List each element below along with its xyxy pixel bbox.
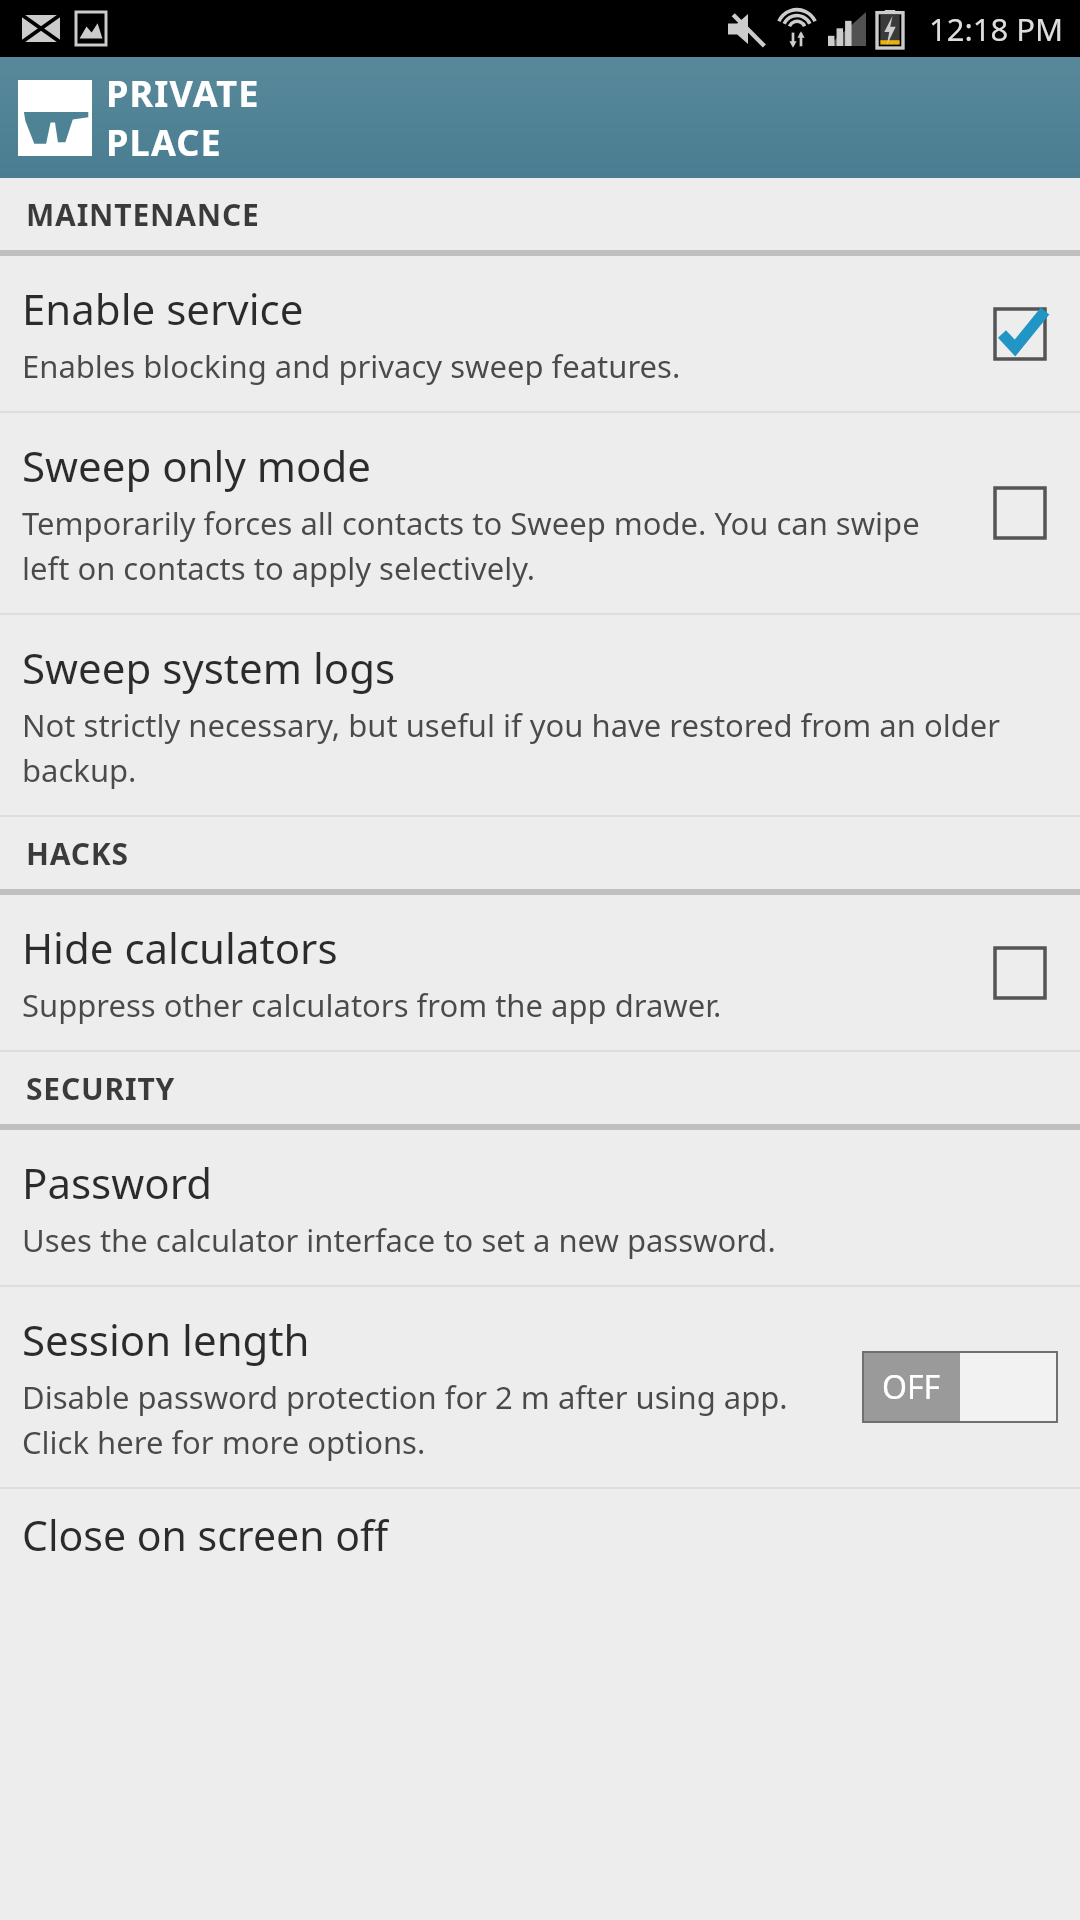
button[interactable]: Hide calculators bbox=[0, 895, 1080, 1050]
button[interactable]: Sweep system logs bbox=[0, 615, 1080, 815]
staticText: Temporarily forces all contacts to Sweep… bbox=[22, 502, 964, 589]
staticText: Close on screen off bbox=[22, 1507, 389, 1559]
staticText: HACKS bbox=[26, 833, 129, 874]
staticText: Enable service bbox=[22, 280, 304, 337]
staticText: Suppress other calculators from the app … bbox=[22, 984, 722, 1026]
button[interactable]: Checked bbox=[982, 296, 1058, 372]
staticText: Uses the calculator interface to set a n… bbox=[22, 1219, 776, 1261]
staticText: OFF bbox=[882, 1365, 941, 1409]
button[interactable]: Close on screen off bbox=[0, 1489, 1080, 1559]
staticText: Hide calculators bbox=[22, 919, 338, 976]
button[interactable]: Private Place bbox=[18, 69, 260, 167]
button[interactable]: Sweep only mode bbox=[0, 413, 1080, 613]
button[interactable]: Password bbox=[0, 1130, 1080, 1285]
staticText: MAINTENANCE bbox=[26, 194, 260, 235]
button[interactable]: Enable service bbox=[0, 256, 1080, 411]
button[interactable]: Unchecked bbox=[982, 475, 1058, 551]
staticText: Session length bbox=[22, 1311, 310, 1368]
button[interactable]: Session length bbox=[0, 1287, 1080, 1487]
staticText: Password bbox=[22, 1154, 212, 1211]
staticText: Sweep only mode bbox=[22, 437, 371, 494]
staticText: PLACE bbox=[106, 118, 222, 167]
staticText: Sweep system logs bbox=[22, 639, 396, 696]
staticText: PRIVATE bbox=[106, 69, 260, 118]
staticText: 12:18 PM bbox=[929, 8, 1064, 50]
button[interactable]: Session length toggle, off bbox=[862, 1351, 1058, 1423]
staticText: Enables blocking and privacy sweep featu… bbox=[22, 345, 681, 387]
button[interactable]: Unchecked bbox=[982, 935, 1058, 1011]
staticText: SECURITY bbox=[26, 1068, 176, 1109]
staticText: Disable password protection for 2 m afte… bbox=[22, 1376, 844, 1463]
staticText: Not strictly necessary, but useful if yo… bbox=[22, 704, 1058, 791]
